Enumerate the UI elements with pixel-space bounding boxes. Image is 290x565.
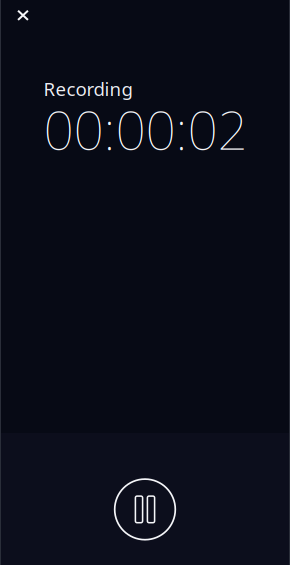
staticText: 00:00:02 [43, 94, 247, 164]
button[interactable]: Pause recording [115, 479, 175, 540]
staticText: Recording [43, 76, 132, 101]
button[interactable]: Close [6, 0, 40, 32]
